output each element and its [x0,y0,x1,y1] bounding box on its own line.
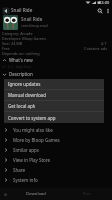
staticText: More by Bloop Games [13,137,60,143]
staticText: You might also like [13,127,53,133]
button[interactable]: Download [10,188,61,200]
staticText: View in Play Store [13,157,51,163]
staticText: Similar apps [13,147,39,153]
button[interactable]: System info [0,175,112,185]
button[interactable]: More options [104,7,111,14]
staticText: v 1.2.3 - bug fixes [2,64,32,69]
staticText: Free [2,46,10,51]
button[interactable]: Get local apk [4,101,104,111]
button[interactable]: More by Bloop Games [0,135,112,145]
button[interactable]: Share [0,165,112,175]
staticText: Get local apk [8,103,36,109]
staticText: com.bloop.snail [21,23,48,28]
button[interactable]: Back [1,6,10,15]
staticText: Size: 24 MB [2,41,23,46]
staticText: Download [26,191,46,197]
button[interactable]: What's new [0,56,112,64]
staticText: Convert to system app [8,115,56,121]
staticText: 4.7 [101,41,107,46]
button[interactable]: Ignore updates [4,79,104,89]
staticText: 12:00 [99,0,110,5]
staticText: Developer: Bloop Games [2,36,47,41]
button[interactable]: You might also like [0,125,112,135]
staticText: Description [9,71,33,77]
button[interactable]: View in Play Store [0,155,112,165]
button[interactable]: Search [95,6,104,15]
button[interactable]: Manual download [4,90,104,100]
staticText: Contains ads [84,46,107,51]
button[interactable]: Description [0,70,112,78]
staticText: Snail Ride [11,7,33,13]
button[interactable]: Convert to system app [4,112,104,123]
staticText: Depends on: nothing [2,51,40,56]
staticText: Share [13,167,26,173]
staticText: System info [13,177,38,183]
button[interactable]: Similar apps [0,145,112,155]
staticText: Run [83,191,91,197]
staticText: Ignore updates [8,81,41,87]
button[interactable]: Uninstall [0,188,10,200]
staticText: Category: Arcade [2,31,33,36]
staticText: What's new [9,57,33,63]
staticText: Snail Ride [21,16,43,22]
staticText: Manual download [8,92,46,98]
